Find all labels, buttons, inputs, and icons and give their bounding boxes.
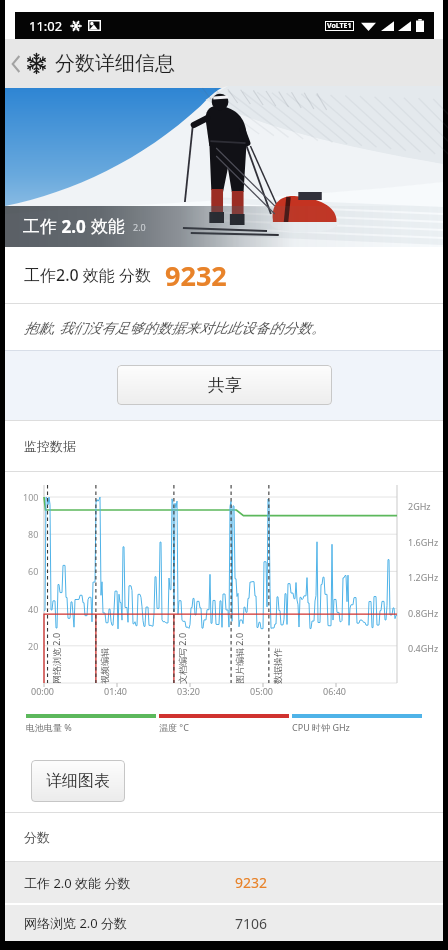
staticText: 图片编辑 2.0 [233,632,245,684]
staticText: 40 [28,603,39,615]
staticText: 11:02 [29,17,63,35]
staticText: 00:00 [31,685,55,697]
staticText: 电池电量 % [26,721,72,733]
staticText: 80 [28,528,39,540]
staticText: 效能 [91,216,125,237]
staticText: VoLTE1 [327,21,352,31]
staticText: 20 [28,640,39,652]
staticText: 0.4GHz [408,642,439,654]
staticText: 9232 [235,873,268,892]
staticText: 工作2.0 效能 分数 [24,264,151,286]
staticText: 共享 [208,375,242,396]
button[interactable]: 工作 2.0 效能 分数 [5,862,443,903]
staticText: 0.8GHz [408,607,439,619]
staticText: CPU 时钟 GHz [292,721,350,733]
staticText: 监控数据 [24,438,76,454]
staticText: 详细图表 [46,771,110,791]
staticText: 60 [28,565,39,577]
staticText: 7106 [235,914,268,933]
button[interactable]: 网络浏览 2.0 分数 [5,905,443,941]
staticText: 2.0 [57,215,91,238]
staticText: 温度 °C [159,721,189,733]
staticText: 2.0 [133,221,146,233]
staticText: 抱歉, 我们没有足够的数据来对比此设备的分数。 [24,318,326,337]
staticText: 视频编辑 [99,648,110,684]
button[interactable]: Back [5,44,26,84]
staticText: 文档编写 2.0 [176,632,188,684]
staticText: 分数 [24,829,50,845]
staticText: 工作 [23,216,57,237]
staticText: 工作 2.0 效能 分数 [24,874,131,892]
staticText: 9232 [165,257,227,294]
staticText: 网络浏览 2.0 分数 [24,914,128,932]
staticText: 1.2GHz [408,571,439,583]
staticText: 05:00 [250,685,274,697]
button[interactable]: 共享 [117,365,332,405]
button[interactable]: 详细图表 [31,760,125,802]
staticText: 01:40 [104,685,128,697]
staticText: 2GHz [408,500,431,512]
staticText: 分数详细信息 [55,51,175,76]
staticText: 数据操作 [272,648,283,684]
staticText: 03:20 [177,685,201,697]
staticText: 1.6GHz [408,536,439,548]
staticText: 网络浏览 2.0 [50,632,62,684]
staticText: 100 [23,491,39,503]
staticText: 06:40 [323,685,347,697]
